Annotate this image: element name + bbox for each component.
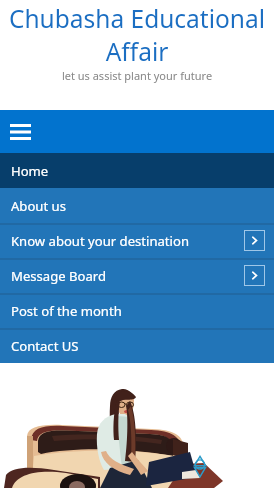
staticText: let us assist plant your future bbox=[0, 68, 274, 83]
button[interactable]: Message Board bbox=[0, 258, 274, 293]
staticText: Chubasha Educational Affair bbox=[5, 2, 269, 68]
button[interactable]: Home bbox=[0, 153, 274, 188]
button[interactable]: Expand submenu bbox=[244, 265, 265, 286]
staticText: Post of the month bbox=[11, 302, 122, 320]
staticText: Home bbox=[11, 162, 49, 180]
staticText: Contact US bbox=[11, 337, 79, 355]
button[interactable]: Expand submenu bbox=[244, 230, 265, 251]
button[interactable]: Know about your destination bbox=[0, 223, 274, 258]
button[interactable]: About us bbox=[0, 188, 274, 223]
button[interactable]: Contact US bbox=[0, 328, 274, 363]
button[interactable]: Open navigation menu bbox=[6, 118, 34, 146]
button[interactable]: Post of the month bbox=[0, 293, 274, 328]
staticText: Know about your destination bbox=[11, 232, 189, 250]
staticText: About us bbox=[11, 197, 66, 215]
staticText: Message Board bbox=[11, 267, 106, 285]
